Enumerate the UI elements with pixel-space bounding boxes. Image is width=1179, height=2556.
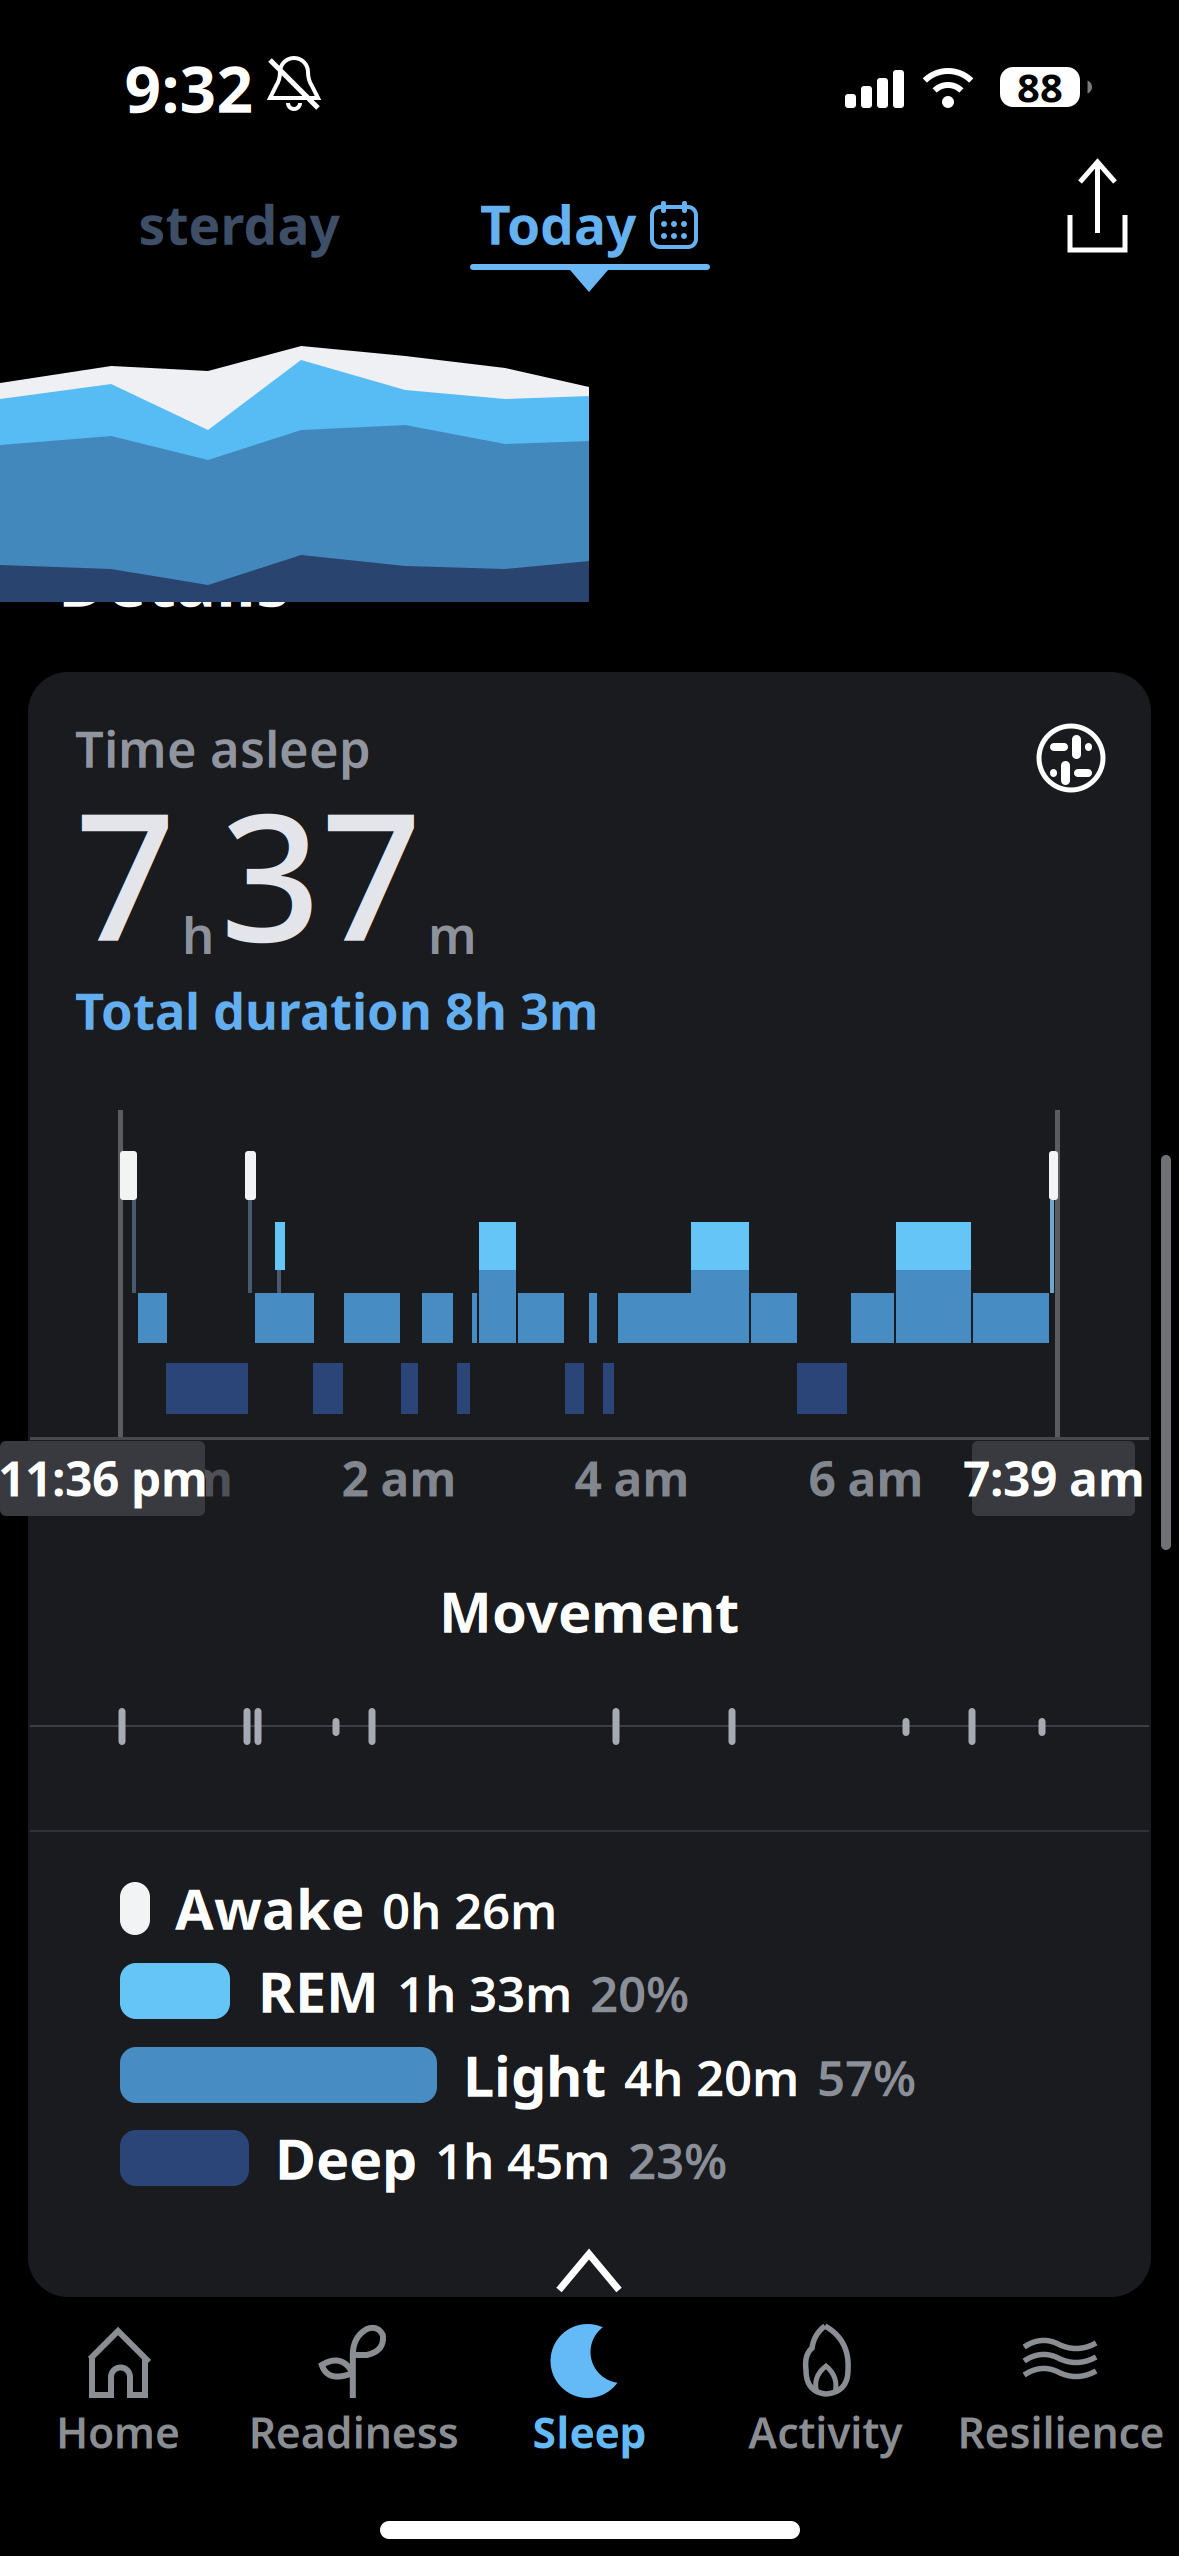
button[interactable]: Today	[480, 189, 698, 259]
staticText: 23%	[628, 2127, 727, 2193]
staticText: REM	[258, 1954, 379, 2028]
staticText: 9:32	[124, 45, 253, 130]
staticText: Movement	[439, 1574, 739, 1648]
staticText: h	[182, 901, 214, 968]
staticText: Details	[58, 537, 289, 625]
button[interactable]: Resilience	[943, 2315, 1179, 2485]
staticText: Activity	[748, 2404, 902, 2460]
staticText: Readiness	[249, 2404, 459, 2460]
staticText: 0h 26m	[382, 1877, 557, 1943]
staticText: 7:39 am	[963, 1446, 1145, 1510]
staticText: Home	[56, 2404, 180, 2460]
button[interactable]	[1040, 145, 1150, 265]
staticText: sterday	[138, 189, 339, 259]
staticText: Today	[480, 189, 636, 259]
staticText: 4 am	[574, 1446, 689, 1510]
staticText: Light	[463, 2038, 606, 2112]
staticText: 6 am	[808, 1446, 923, 1510]
staticText: 11:36 pm	[0, 1446, 208, 1510]
staticText: Time asleep	[75, 714, 371, 782]
staticText: 4h 20m	[624, 2044, 799, 2110]
staticText: 20%	[590, 1960, 689, 2026]
staticText: 7	[75, 756, 176, 990]
staticText: m	[186, 1446, 233, 1510]
button[interactable]	[1026, 713, 1116, 803]
staticText: 2 am	[341, 1446, 456, 1510]
staticText: 88	[1017, 60, 1063, 113]
button[interactable]: Readiness	[236, 2315, 472, 2485]
staticText: Deep	[275, 2121, 417, 2195]
button[interactable]: Home	[0, 2315, 236, 2485]
staticText: 57%	[817, 2044, 916, 2110]
staticText: Sleep	[532, 2404, 646, 2460]
staticText: Resilience	[958, 2404, 1165, 2460]
staticText: Awake	[175, 1871, 364, 1945]
button[interactable]: Sleep	[471, 2315, 707, 2485]
staticText: Total duration 8h 3m	[75, 976, 598, 1044]
staticText: 1h 45m	[435, 2127, 610, 2193]
staticText: m	[428, 901, 477, 968]
button[interactable]: sterday	[138, 189, 339, 259]
button[interactable]: Activity	[707, 2315, 943, 2485]
button[interactable]	[529, 2232, 649, 2312]
staticText: 1h 33m	[397, 1960, 572, 2026]
staticText: 37	[220, 756, 422, 990]
